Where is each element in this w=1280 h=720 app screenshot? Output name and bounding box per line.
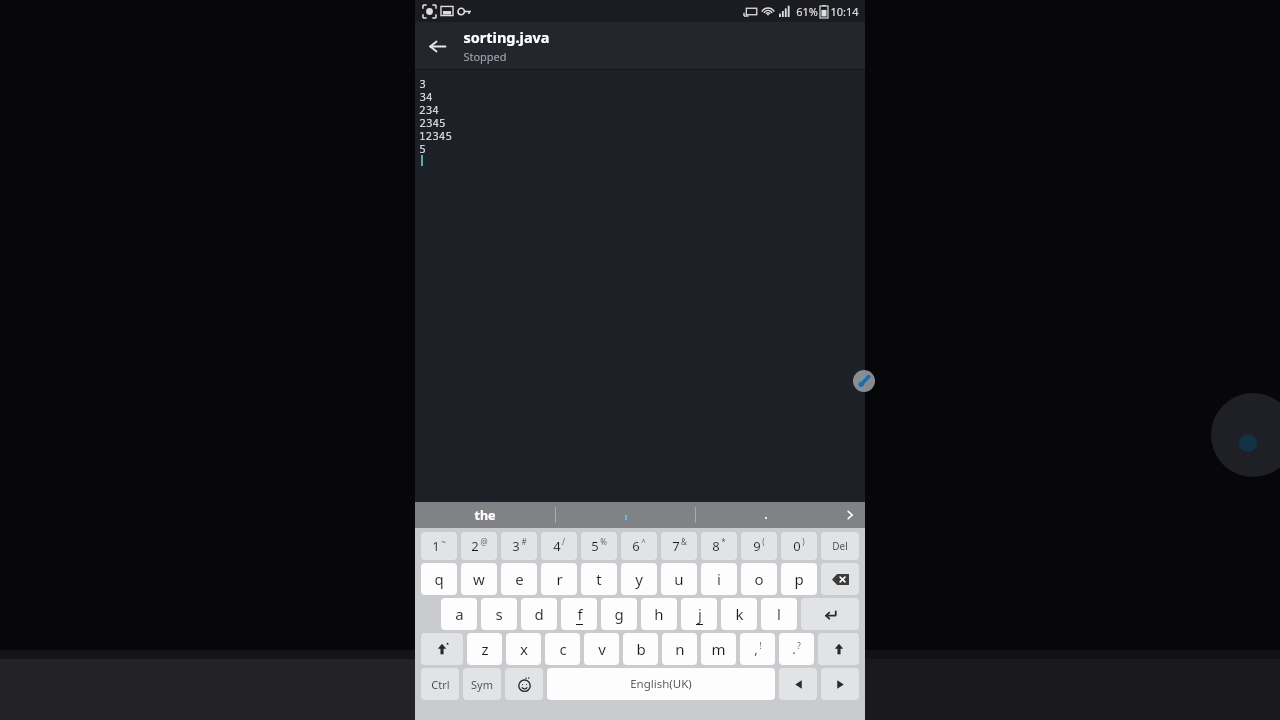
button[interactable]: English(UK) <box>547 668 775 700</box>
button[interactable]: f <box>561 598 597 630</box>
button[interactable]: h <box>641 598 677 630</box>
button[interactable]: k <box>721 598 757 630</box>
staticText: 7 <box>672 537 680 555</box>
button[interactable]: c <box>545 633 580 665</box>
button[interactable]: Ctrl <box>421 668 459 700</box>
button[interactable]: l <box>761 598 797 630</box>
button[interactable]: i <box>701 563 737 595</box>
staticText: n <box>675 639 685 659</box>
staticText: 6 <box>632 537 640 555</box>
button[interactable]: v <box>584 633 619 665</box>
button[interactable]: m <box>701 633 736 665</box>
staticText: Ctrl <box>431 677 450 692</box>
staticText: Sym <box>471 677 493 692</box>
button[interactable]: Move right <box>821 668 859 700</box>
button[interactable]: 6 <box>621 532 657 560</box>
button[interactable]: 2 <box>461 532 497 560</box>
button[interactable]: Shift up <box>818 633 859 665</box>
button[interactable]: 9 <box>741 532 777 560</box>
button[interactable]: b <box>623 633 658 665</box>
button[interactable]: p <box>781 563 817 595</box>
button[interactable]: Back <box>415 24 459 68</box>
staticText: h <box>654 604 664 624</box>
staticText: 2345 <box>419 115 446 128</box>
staticText: @ <box>480 536 488 547</box>
button[interactable]: y <box>621 563 657 595</box>
staticText: g <box>614 604 624 624</box>
staticText: ) <box>802 536 805 547</box>
staticText: the <box>474 507 496 524</box>
staticText: d <box>534 604 544 624</box>
button[interactable]: d <box>521 598 557 630</box>
button[interactable] <box>696 502 835 528</box>
staticText: sorting.java <box>463 27 550 47</box>
button[interactable]: n <box>662 633 697 665</box>
button[interactable] <box>556 502 695 528</box>
staticText: z <box>481 639 489 659</box>
staticText: Del <box>832 539 848 553</box>
staticText: 4 <box>553 537 561 555</box>
button[interactable]: Sym <box>463 668 501 700</box>
staticText: s <box>495 604 503 624</box>
button[interactable]: Delete <box>821 532 859 560</box>
button[interactable]: Enter <box>801 598 859 630</box>
staticText: 5 <box>419 141 426 154</box>
button[interactable]: q <box>421 563 457 595</box>
button[interactable]: e <box>501 563 537 595</box>
button[interactable]: , <box>740 633 775 665</box>
button[interactable]: 4 <box>541 532 577 560</box>
staticText: t <box>596 569 602 589</box>
button[interactable]: 1 <box>421 532 457 560</box>
button[interactable]: 5 <box>581 532 617 560</box>
button[interactable]: s <box>481 598 517 630</box>
staticText: 0 <box>793 537 801 555</box>
button[interactable]: r <box>541 563 577 595</box>
staticText: ( <box>762 536 765 547</box>
staticText: ! <box>759 640 762 651</box>
button[interactable]: u <box>661 563 697 595</box>
staticText: 10:14 <box>830 4 859 19</box>
button[interactable]: o <box>741 563 777 595</box>
staticText: l <box>777 604 781 624</box>
staticText: ? <box>797 640 801 651</box>
button[interactable]: t <box>581 563 617 595</box>
staticText: 12345 <box>419 128 452 141</box>
staticText: i <box>717 569 721 589</box>
button[interactable]: 8 <box>701 532 737 560</box>
button[interactable]: Emoji <box>505 668 543 700</box>
button[interactable]: g <box>601 598 637 630</box>
button[interactable]: a <box>441 598 477 630</box>
button[interactable]: w <box>461 563 497 595</box>
button[interactable]: z <box>467 633 502 665</box>
staticText: Stopped <box>463 49 507 64</box>
staticText: , <box>754 640 758 658</box>
staticText: # <box>521 536 527 547</box>
staticText: a <box>455 604 464 624</box>
staticText: u <box>674 569 684 589</box>
button[interactable]: Floating control <box>853 370 875 392</box>
button[interactable]: . <box>779 633 814 665</box>
staticText: 5 <box>591 537 599 555</box>
button[interactable]: Backspace <box>821 563 859 595</box>
staticText: 234 <box>419 102 439 115</box>
staticText: w <box>473 569 485 589</box>
button[interactable]: x <box>506 633 541 665</box>
button[interactable]: More suggestions <box>835 502 865 528</box>
button[interactable]: 3 <box>501 532 537 560</box>
staticText: & <box>681 536 687 547</box>
button[interactable]: Shift <box>421 633 463 665</box>
staticText: 3 <box>419 76 426 89</box>
button[interactable]: the <box>415 502 555 528</box>
staticText: * <box>721 536 726 547</box>
button[interactable]: 7 <box>661 532 697 560</box>
staticText: m <box>711 639 726 659</box>
staticText: 3 <box>512 537 520 555</box>
button[interactable]: Move left <box>779 668 817 700</box>
button[interactable]: 0 <box>781 532 817 560</box>
staticText: q <box>434 569 444 589</box>
staticText: ~ <box>441 536 446 547</box>
staticText: 2 <box>471 537 479 555</box>
button[interactable]: j <box>681 598 717 630</box>
staticText: r <box>556 569 563 589</box>
staticText: v <box>598 639 606 659</box>
